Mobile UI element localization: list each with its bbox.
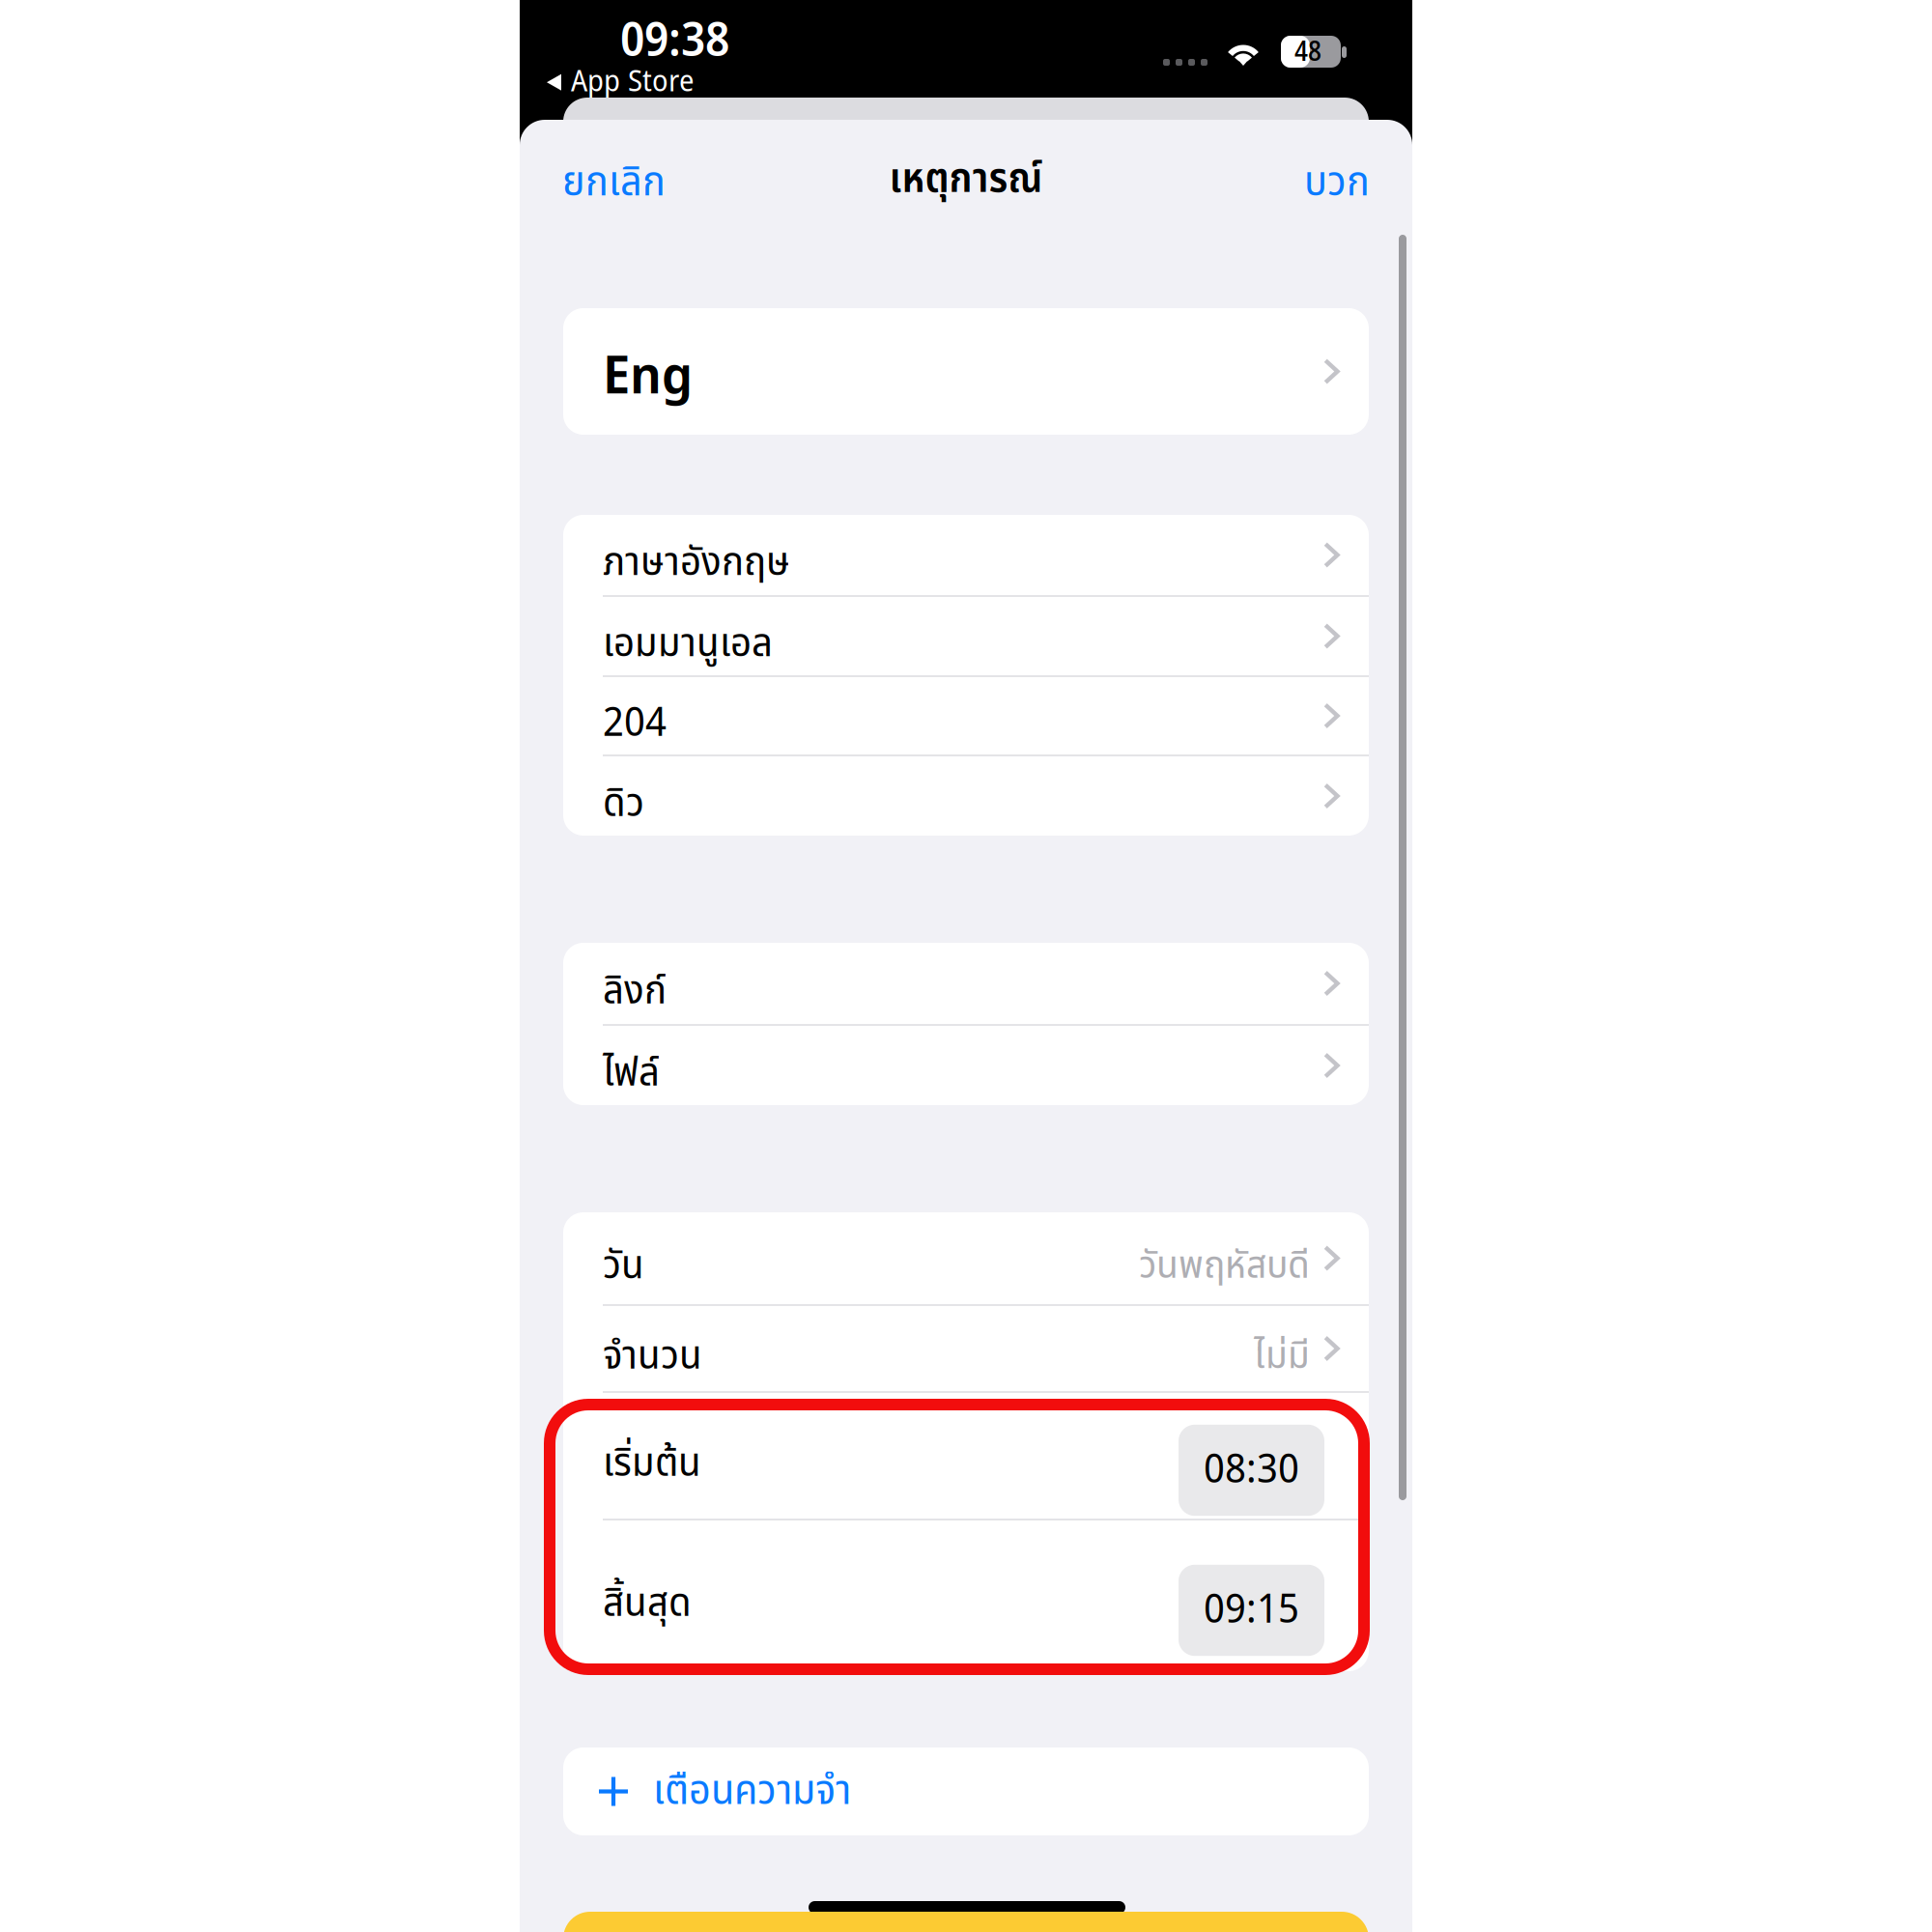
button[interactable]: 204: [563, 677, 1369, 754]
button[interactable]: จำนวน: [563, 1306, 1369, 1391]
staticText: 09:38: [620, 7, 729, 77]
button[interactable]: ดิว: [563, 756, 1369, 836]
staticText: วันพฤหัสบดี: [1139, 1237, 1310, 1295]
staticText: ยกเลิก: [562, 152, 666, 214]
staticText: เหตุการณ์: [889, 148, 1043, 210]
staticText: ไฟล์: [603, 1043, 660, 1103]
staticText: 204: [603, 693, 667, 754]
button[interactable]: วัน: [563, 1212, 1369, 1304]
button[interactable]: เริ่มต้น: [563, 1393, 1369, 1519]
staticText: 48: [1294, 32, 1321, 73]
staticText: ลิงก์: [603, 961, 667, 1021]
staticText: ดิว: [603, 774, 644, 834]
button[interactable]: ลิงก์: [563, 943, 1369, 1024]
staticText: เตือนความจำ: [653, 1760, 851, 1823]
staticText: บวก: [1304, 152, 1370, 214]
button[interactable]: Eng: [563, 308, 1369, 435]
button[interactable]: เอมมานูเอล: [563, 597, 1369, 675]
button[interactable]: เตือนความจำ: [563, 1747, 1369, 1835]
button[interactable]: ภาษาอังกฤษ: [563, 515, 1369, 595]
staticText: วัน: [603, 1236, 644, 1296]
staticText: เอมมานูเอล: [603, 614, 773, 674]
staticText: Eng: [603, 337, 693, 417]
staticText: สิ้นสุด: [603, 1573, 692, 1634]
button[interactable]: ยกเลิก: [562, 152, 666, 214]
staticText: จำนวน: [603, 1326, 702, 1386]
button[interactable]: ไฟล์: [563, 1026, 1369, 1105]
button[interactable]: บวก: [1215, 152, 1370, 214]
staticText: App Store: [571, 60, 694, 105]
staticText: 08:30: [1204, 1440, 1299, 1500]
button[interactable]: App Store: [546, 60, 694, 105]
staticText: เริ่มต้น: [603, 1433, 701, 1494]
staticText: ภาษาอังกฤษ: [603, 533, 790, 593]
staticText: 09:15: [1204, 1580, 1299, 1641]
staticText: ไม่มี: [1254, 1327, 1310, 1385]
button[interactable]: สิ้นสุด: [563, 1520, 1369, 1671]
